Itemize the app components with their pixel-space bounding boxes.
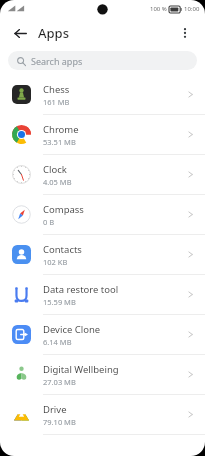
staticText: 27.03 MB [43,377,76,387]
button[interactable]: Back [8,21,32,45]
button[interactable]: Compass [0,195,205,235]
staticText: 53.51 MB [43,137,76,147]
staticText: Device Clone [43,323,101,336]
staticText: Clock [43,163,67,176]
button[interactable]: Digital Wellbeing [0,355,205,395]
button[interactable]: Clock [0,155,205,195]
staticText: Chrome [43,123,79,136]
staticText: Drive [43,403,67,416]
staticText: 161 MB [43,97,70,107]
button[interactable]: Device Clone [0,315,205,355]
button[interactable]: Drive [0,395,205,435]
button[interactable]: Data restore tool [0,275,205,315]
staticText: Search apps [31,55,83,67]
staticText: Data restore tool [43,283,119,296]
staticText: Contacts [43,243,82,256]
staticText: 0 B [43,217,55,227]
staticText: 10:00 [184,5,200,13]
staticText: 6.14 MB [43,337,72,347]
staticText: Digital Wellbeing [43,363,119,376]
button[interactable]: Search apps [8,51,197,70]
staticText: 4.05 MB [43,177,72,187]
staticText: 79.10 MB [43,417,76,427]
button[interactable]: Chrome [0,115,205,155]
staticText: 102 KB [43,257,68,267]
button[interactable]: Contacts [0,235,205,275]
staticText: Apps [38,24,69,42]
staticText: 15.59 MB [43,297,76,307]
button[interactable]: Chess [0,75,205,115]
staticText: 100 % [150,5,167,13]
button[interactable]: More options [173,21,197,45]
staticText: Compass [43,203,84,216]
staticText: Chess [43,83,70,96]
